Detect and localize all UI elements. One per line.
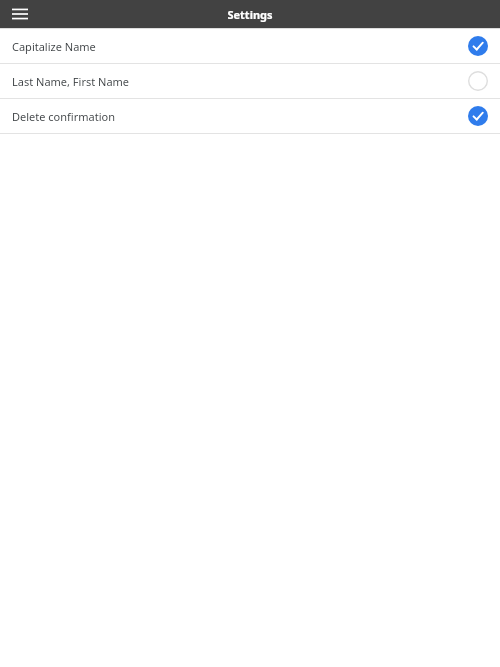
staticText: Delete confirmation: [12, 109, 115, 124]
staticText: Last Name, First Name: [12, 74, 130, 89]
button[interactable]: Last Name, First Name: [0, 64, 500, 98]
button[interactable]: Delete confirmation: [0, 99, 500, 133]
staticText: Capitalize Name: [12, 39, 96, 54]
button[interactable]: Capitalize Name: [0, 29, 500, 63]
button[interactable]: Open navigation menu: [6, 0, 34, 28]
staticText: Settings: [0, 7, 500, 22]
